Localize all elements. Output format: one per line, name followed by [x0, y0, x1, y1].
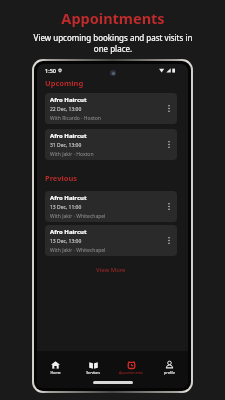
staticText: View More — [96, 266, 126, 274]
staticText: Afro Haircut — [50, 194, 87, 202]
staticText: Afro Haircut — [50, 96, 87, 104]
staticText: Afro Haircut — [50, 132, 87, 140]
button[interactable]: Services — [74, 359, 112, 377]
button[interactable]: More options — [164, 104, 173, 113]
staticText: Previous — [45, 173, 78, 183]
button[interactable]: More options — [164, 140, 173, 149]
staticText: 22 Dec, 13:00 — [50, 106, 82, 113]
staticText: 31 Dec, 13:00 — [50, 142, 82, 149]
staticText: 13 Dec, 11:00 — [50, 204, 82, 211]
staticText: With Jakir · Hoxton — [50, 151, 94, 158]
staticText: Upcoming — [45, 78, 84, 88]
button[interactable]: More options — [164, 236, 173, 245]
staticText: profile — [164, 370, 175, 375]
staticText: 13 Dec, 13:00 — [50, 238, 82, 245]
button[interactable]: Afro Haircut — [45, 225, 177, 256]
staticText: Home — [50, 370, 61, 375]
staticText: With Jakir · Whitechapel — [50, 213, 106, 220]
button[interactable]: More options — [164, 202, 173, 211]
button[interactable]: profile — [150, 359, 188, 377]
staticText: Appointments — [119, 370, 143, 375]
staticText: 1:50 — [45, 67, 56, 74]
button[interactable]: Afro Haircut — [45, 129, 177, 160]
button[interactable]: Appointments — [112, 359, 150, 377]
button[interactable]: Afro Haircut — [45, 191, 177, 222]
staticText: Afro Haircut — [50, 228, 87, 236]
staticText: With Ricardo · Hoxton — [50, 115, 101, 122]
button[interactable]: View More — [93, 265, 129, 275]
button[interactable]: Afro Haircut — [45, 93, 177, 124]
staticText: View upcoming bookings and past visits i… — [27, 32, 199, 55]
button[interactable]: Home — [37, 359, 74, 377]
staticText: With Jakir · Whitechapel — [50, 247, 106, 254]
staticText: Services — [86, 370, 100, 375]
staticText: Appointments — [61, 8, 165, 28]
